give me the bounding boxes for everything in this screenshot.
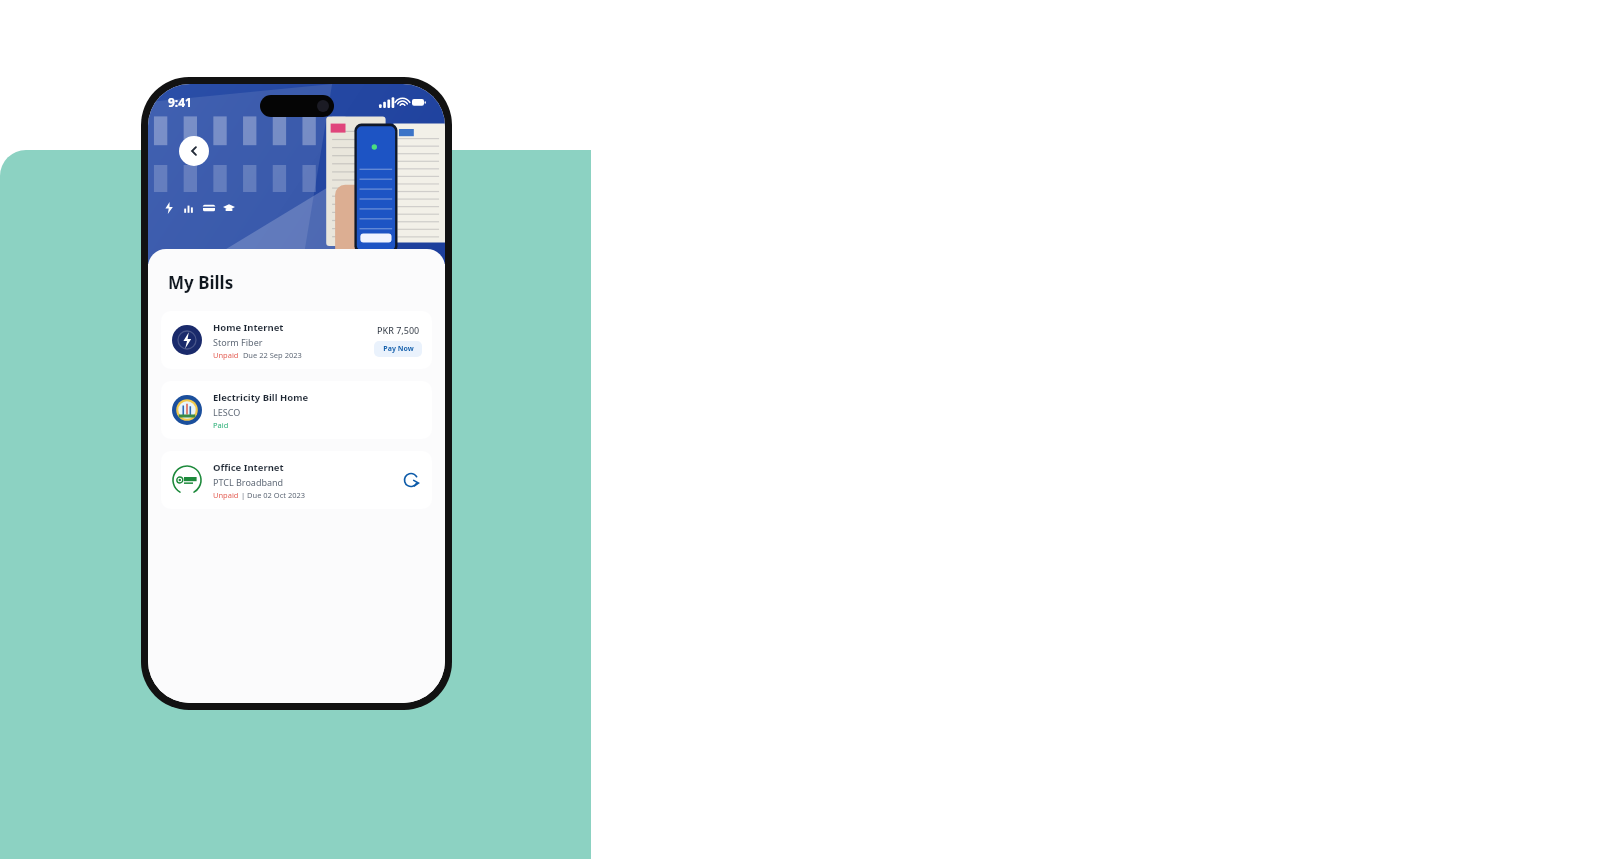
button[interactable]: Back: [179, 136, 209, 166]
button[interactable]: Electricity Bill Home: [161, 381, 432, 439]
staticText: Pay Now: [383, 344, 414, 354]
button[interactable]: Category: [203, 202, 215, 214]
button[interactable]: Refresh: [400, 469, 422, 491]
button[interactable]: Office Internet: [161, 451, 432, 509]
staticText: Storm Fiber: [213, 336, 263, 348]
button[interactable]: Home Internet: [161, 311, 432, 369]
staticText: Due 22 Sep 2023: [239, 350, 302, 360]
staticText: PTCL Broadband: [213, 476, 284, 488]
staticText: My Bills: [168, 271, 234, 294]
button[interactable]: Category: [183, 202, 195, 214]
button[interactable]: Category: [163, 202, 175, 214]
staticText: LESCO: [213, 406, 241, 418]
staticText: | Due 02 Oct 2023: [239, 490, 306, 500]
button[interactable]: Pay Now: [374, 341, 422, 357]
staticText: Unpaid: [213, 490, 239, 500]
staticText: Home Internet: [213, 321, 284, 334]
staticText: PKR 7,500: [377, 324, 420, 336]
staticText: Unpaid: [213, 350, 239, 360]
button[interactable]: Category: [223, 202, 235, 214]
staticText: Paid: [213, 420, 229, 430]
staticText: Office Internet: [213, 461, 284, 474]
staticText: 9:41: [168, 94, 192, 110]
staticText: Electricity Bill Home: [213, 391, 309, 404]
